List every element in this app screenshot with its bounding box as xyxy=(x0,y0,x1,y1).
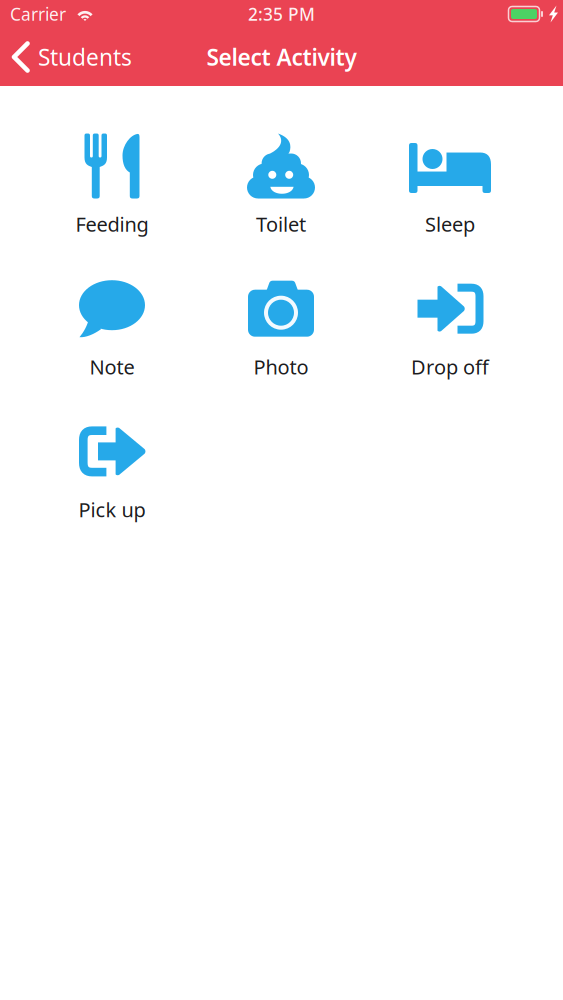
button[interactable]: Feeding xyxy=(27,129,196,272)
staticText: Note xyxy=(89,353,134,380)
button[interactable]: Note xyxy=(27,272,196,414)
staticText: Students xyxy=(38,42,132,72)
button[interactable]: Toilet xyxy=(196,129,365,272)
staticText: Toilet xyxy=(256,211,306,237)
staticText: Sleep xyxy=(425,211,475,237)
staticText: Feeding xyxy=(75,211,148,237)
button[interactable]: Pick up xyxy=(27,414,196,557)
staticText: 2:35 PM xyxy=(248,2,315,25)
button[interactable]: Sleep xyxy=(365,129,534,272)
button[interactable]: Students xyxy=(0,35,140,79)
button[interactable]: Drop off xyxy=(365,272,534,414)
staticText: Drop off xyxy=(411,353,489,380)
staticText: Pick up xyxy=(78,496,145,523)
staticText: Photo xyxy=(253,353,308,380)
button[interactable]: Photo xyxy=(196,272,365,414)
staticText: Select Activity xyxy=(206,42,356,72)
staticText: Carrier xyxy=(10,2,66,25)
